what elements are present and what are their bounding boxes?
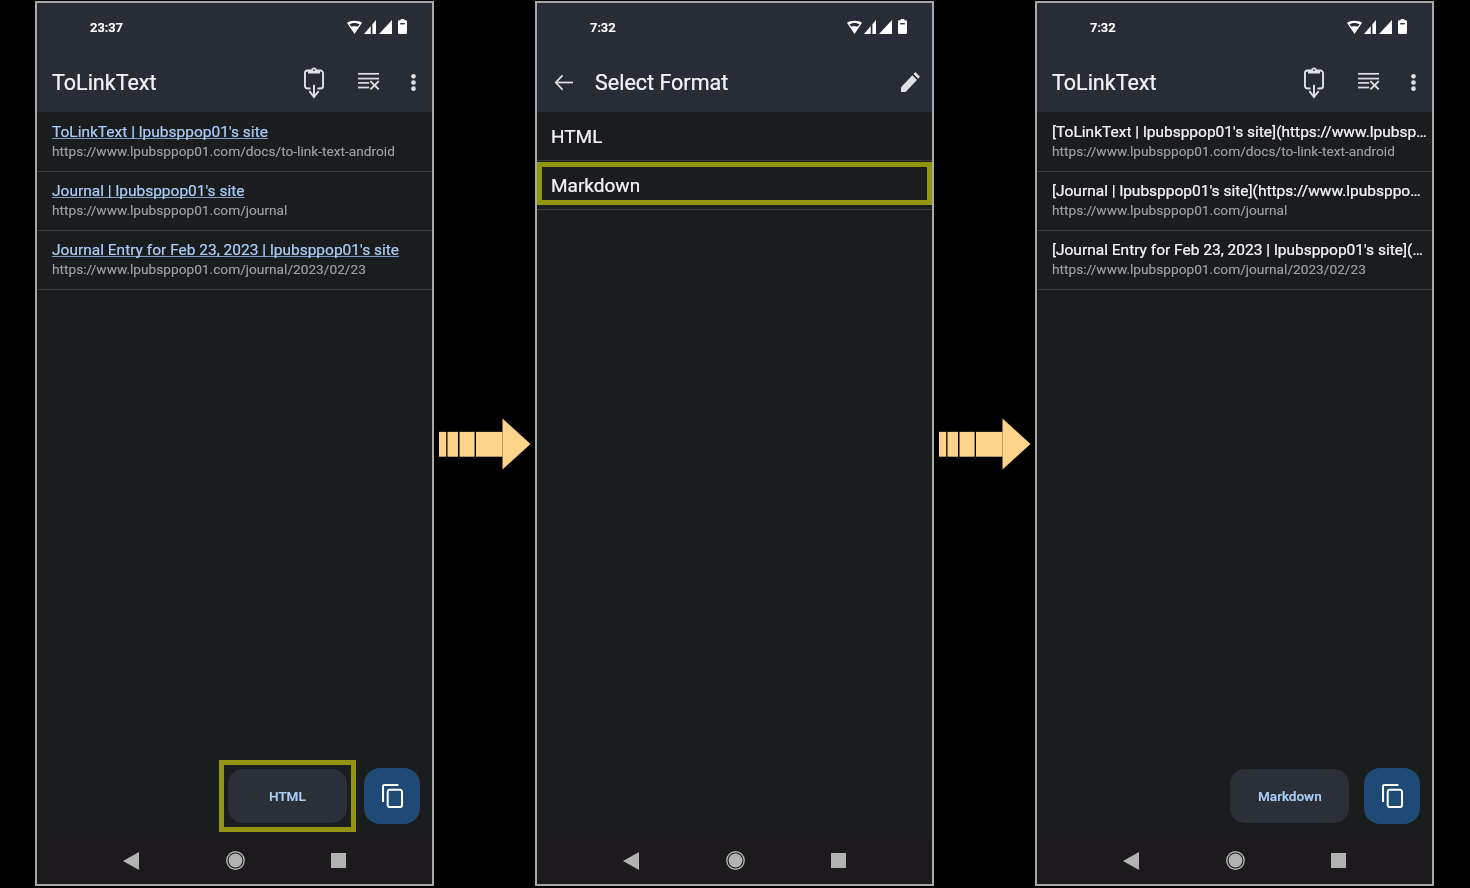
staticText: [Journal | lpubsppop01's site](https://w… [1052, 182, 1427, 200]
button[interactable]: Journal Entry for Feb 23, 2023 | lpubspp… [37, 231, 432, 289]
button[interactable]: Paste from clipboard [1292, 61, 1336, 105]
button[interactable]: Markdown [1230, 769, 1349, 823]
staticText: Select Format [595, 70, 729, 95]
button[interactable]: Edit [889, 62, 931, 104]
staticText: 7:32 [590, 20, 616, 35]
staticText: Journal Entry for Feb 23, 2023 | lpubspp… [52, 241, 400, 259]
staticText: https://www.lpubsppop01.com/journal/2023… [1052, 261, 1366, 277]
staticText: https://www.lpubsppop01.com/docs/to-link… [52, 143, 395, 159]
staticText: https://www.lpubsppop01.com/journal [52, 202, 288, 218]
button[interactable]: Markdown [537, 161, 932, 209]
button[interactable]: Paste from clipboard [292, 61, 336, 105]
staticText: https://www.lpubsppop01.com/journal [1052, 202, 1288, 218]
button[interactable]: Clear list [346, 61, 390, 105]
staticText: Journal | lpubsppop01's site [52, 182, 245, 200]
button[interactable]: Clear list [1346, 61, 1390, 105]
button[interactable]: [Journal | lpubsppop01's site](https://w… [1037, 172, 1432, 230]
button[interactable]: [ToLinkText | lpubsppop01's site](https:… [1037, 112, 1432, 171]
button[interactable]: Back [37, 839, 139, 884]
button[interactable]: More options [1391, 61, 1435, 105]
button[interactable]: Copy to clipboard [364, 768, 420, 824]
button[interactable]: Back [1037, 839, 1139, 884]
staticText: https://www.lpubsppop01.com/docs/to-link… [1052, 143, 1395, 159]
button[interactable]: ToLinkText | lpubsppop01's site [37, 112, 432, 171]
button[interactable]: HTML [228, 769, 347, 823]
staticText: ToLinkText [52, 70, 157, 95]
staticText: ToLinkText [1052, 70, 1157, 95]
button[interactable]: HTML [537, 112, 932, 160]
staticText: Markdown [551, 174, 641, 196]
button[interactable]: More options [391, 61, 435, 105]
button[interactable]: Journal | lpubsppop01's site [37, 172, 432, 230]
button[interactable]: Navigate up [543, 62, 585, 104]
button[interactable]: Copy to clipboard [1364, 768, 1420, 824]
button[interactable]: Recent apps [331, 839, 432, 884]
button[interactable]: Recent apps [1331, 839, 1432, 884]
button[interactable]: Back [537, 839, 639, 884]
button[interactable]: [Journal Entry for Feb 23, 2023 | lpubsp… [1037, 231, 1432, 289]
staticText: Markdown [1258, 788, 1322, 804]
button[interactable]: Recent apps [831, 839, 932, 884]
button[interactable]: Home [1139, 839, 1331, 884]
staticText: [Journal Entry for Feb 23, 2023 | lpubsp… [1052, 241, 1427, 259]
staticText: HTML [551, 125, 603, 147]
button[interactable]: Home [639, 839, 831, 884]
staticText: https://www.lpubsppop01.com/journal/2023… [52, 261, 366, 277]
button[interactable]: Home [139, 839, 331, 884]
staticText: 23:37 [90, 20, 124, 35]
staticText: 7:32 [1090, 20, 1116, 35]
staticText: [ToLinkText | lpubsppop01's site](https:… [1052, 123, 1427, 141]
staticText: HTML [269, 788, 306, 804]
staticText: ToLinkText | lpubsppop01's site [52, 123, 268, 141]
